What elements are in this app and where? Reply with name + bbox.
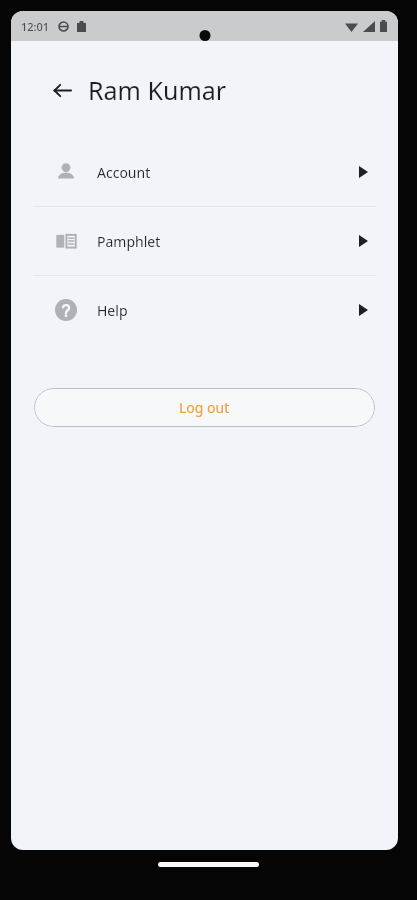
button[interactable]: Account	[11, 138, 398, 206]
staticText: 12:01	[21, 19, 50, 34]
staticText: Account	[97, 163, 151, 182]
button[interactable]: Pamphlet	[11, 207, 398, 275]
staticText: Log out	[179, 398, 230, 417]
button[interactable]: Back	[49, 77, 75, 103]
button[interactable]: Help	[11, 276, 398, 344]
staticText: Pamphlet	[97, 232, 161, 251]
staticText: Ram Kumar	[88, 73, 227, 107]
button[interactable]: Log out	[34, 388, 375, 427]
staticText: Help	[97, 301, 128, 320]
